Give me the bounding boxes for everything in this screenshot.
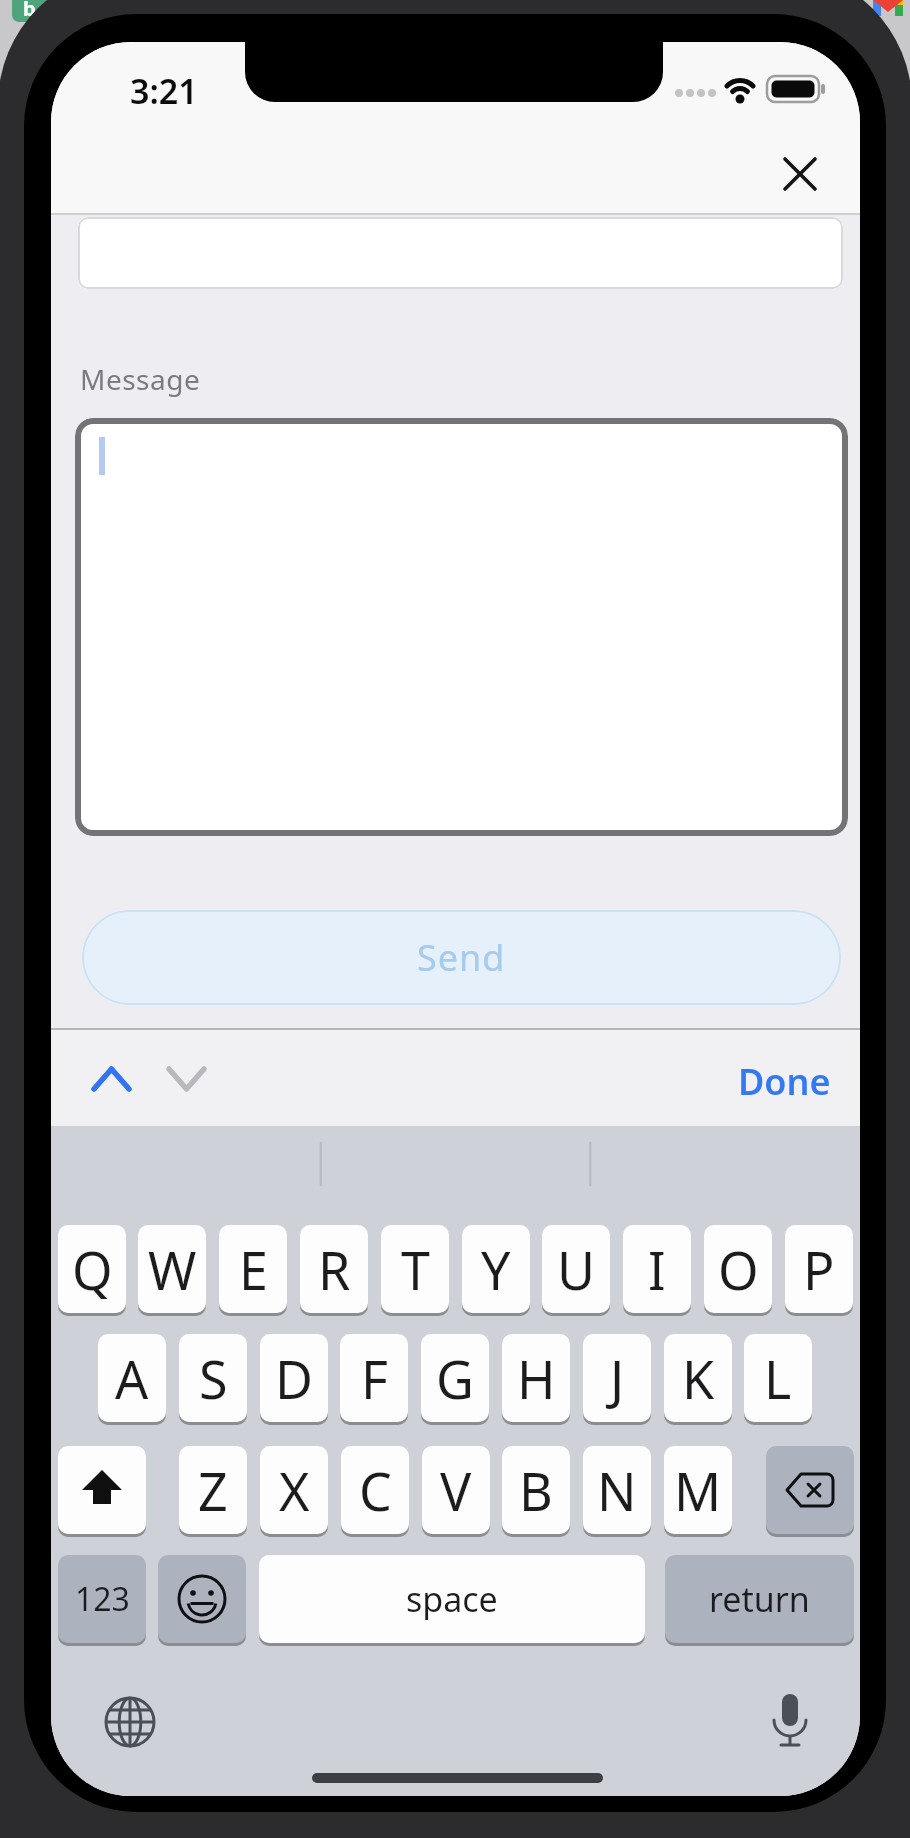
button[interactable]: L: [744, 1334, 812, 1422]
button[interactable]: [766, 1446, 854, 1534]
button[interactable]: D: [260, 1334, 328, 1422]
staticText: R: [318, 1234, 351, 1305]
button[interactable]: V: [422, 1446, 490, 1534]
staticText: B: [519, 1455, 553, 1526]
button[interactable]: [94, 1066, 214, 1092]
staticText: I: [648, 1234, 666, 1305]
staticText: J: [610, 1343, 625, 1414]
button[interactable]: [75, 418, 848, 836]
button[interactable]: Done: [731, 1057, 831, 1103]
button[interactable]: M: [664, 1446, 732, 1534]
button[interactable]: S: [179, 1334, 247, 1422]
button[interactable]: Send: [82, 910, 841, 1005]
staticText: Send: [417, 933, 506, 982]
staticText: S: [199, 1343, 228, 1414]
button[interactable]: P: [785, 1225, 853, 1313]
button[interactable]: [777, 151, 823, 197]
button[interactable]: N: [583, 1446, 651, 1534]
button[interactable]: [78, 217, 843, 289]
button[interactable]: U: [542, 1225, 610, 1313]
button[interactable]: C: [341, 1446, 409, 1534]
staticText: Done: [738, 1057, 831, 1103]
staticText: K: [682, 1343, 715, 1414]
button[interactable]: E: [219, 1225, 287, 1313]
button[interactable]: R: [300, 1225, 368, 1313]
staticText: C: [359, 1455, 392, 1526]
staticText: X: [279, 1455, 310, 1526]
staticText: W: [148, 1234, 197, 1305]
button[interactable]: [770, 1692, 810, 1752]
staticText: space: [406, 1576, 498, 1622]
button[interactable]: [58, 1446, 146, 1534]
button[interactable]: K: [664, 1334, 732, 1422]
button[interactable]: [158, 1555, 246, 1643]
staticText: Q: [72, 1234, 113, 1305]
staticText: P: [803, 1234, 835, 1305]
button[interactable]: I: [623, 1225, 691, 1313]
button[interactable]: W: [138, 1225, 206, 1313]
staticText: Y: [481, 1234, 511, 1305]
staticText: F: [361, 1343, 388, 1414]
button[interactable]: 123: [58, 1555, 146, 1643]
staticText: 3:21: [130, 68, 198, 108]
staticText: 123: [75, 1577, 130, 1621]
staticText: Z: [198, 1455, 228, 1526]
staticText: G: [436, 1343, 474, 1414]
staticText: E: [239, 1234, 268, 1305]
staticText: return: [709, 1576, 810, 1622]
button[interactable]: Q: [58, 1225, 126, 1313]
staticText: U: [557, 1234, 596, 1305]
button[interactable]: [104, 1696, 156, 1748]
staticText: M: [674, 1455, 722, 1526]
staticText: A: [115, 1343, 149, 1414]
button[interactable]: G: [421, 1334, 489, 1422]
button[interactable]: T: [381, 1225, 449, 1313]
staticText: Message: [80, 360, 201, 398]
staticText: T: [401, 1234, 430, 1305]
button[interactable]: space: [259, 1555, 645, 1643]
button[interactable]: return: [665, 1555, 854, 1643]
button[interactable]: F: [340, 1334, 408, 1422]
button[interactable]: X: [260, 1446, 328, 1534]
staticText: V: [440, 1455, 472, 1526]
button[interactable]: Z: [179, 1446, 247, 1534]
button[interactable]: H: [502, 1334, 570, 1422]
staticText: L: [764, 1343, 792, 1414]
button[interactable]: B: [502, 1446, 570, 1534]
staticText: D: [275, 1343, 313, 1414]
button[interactable]: J: [583, 1334, 651, 1422]
button[interactable]: Y: [462, 1225, 530, 1313]
staticText: O: [718, 1234, 759, 1305]
staticText: b: [23, 0, 36, 22]
button[interactable]: O: [704, 1225, 772, 1313]
staticText: H: [517, 1343, 556, 1414]
staticText: N: [597, 1455, 637, 1526]
button[interactable]: A: [98, 1334, 166, 1422]
